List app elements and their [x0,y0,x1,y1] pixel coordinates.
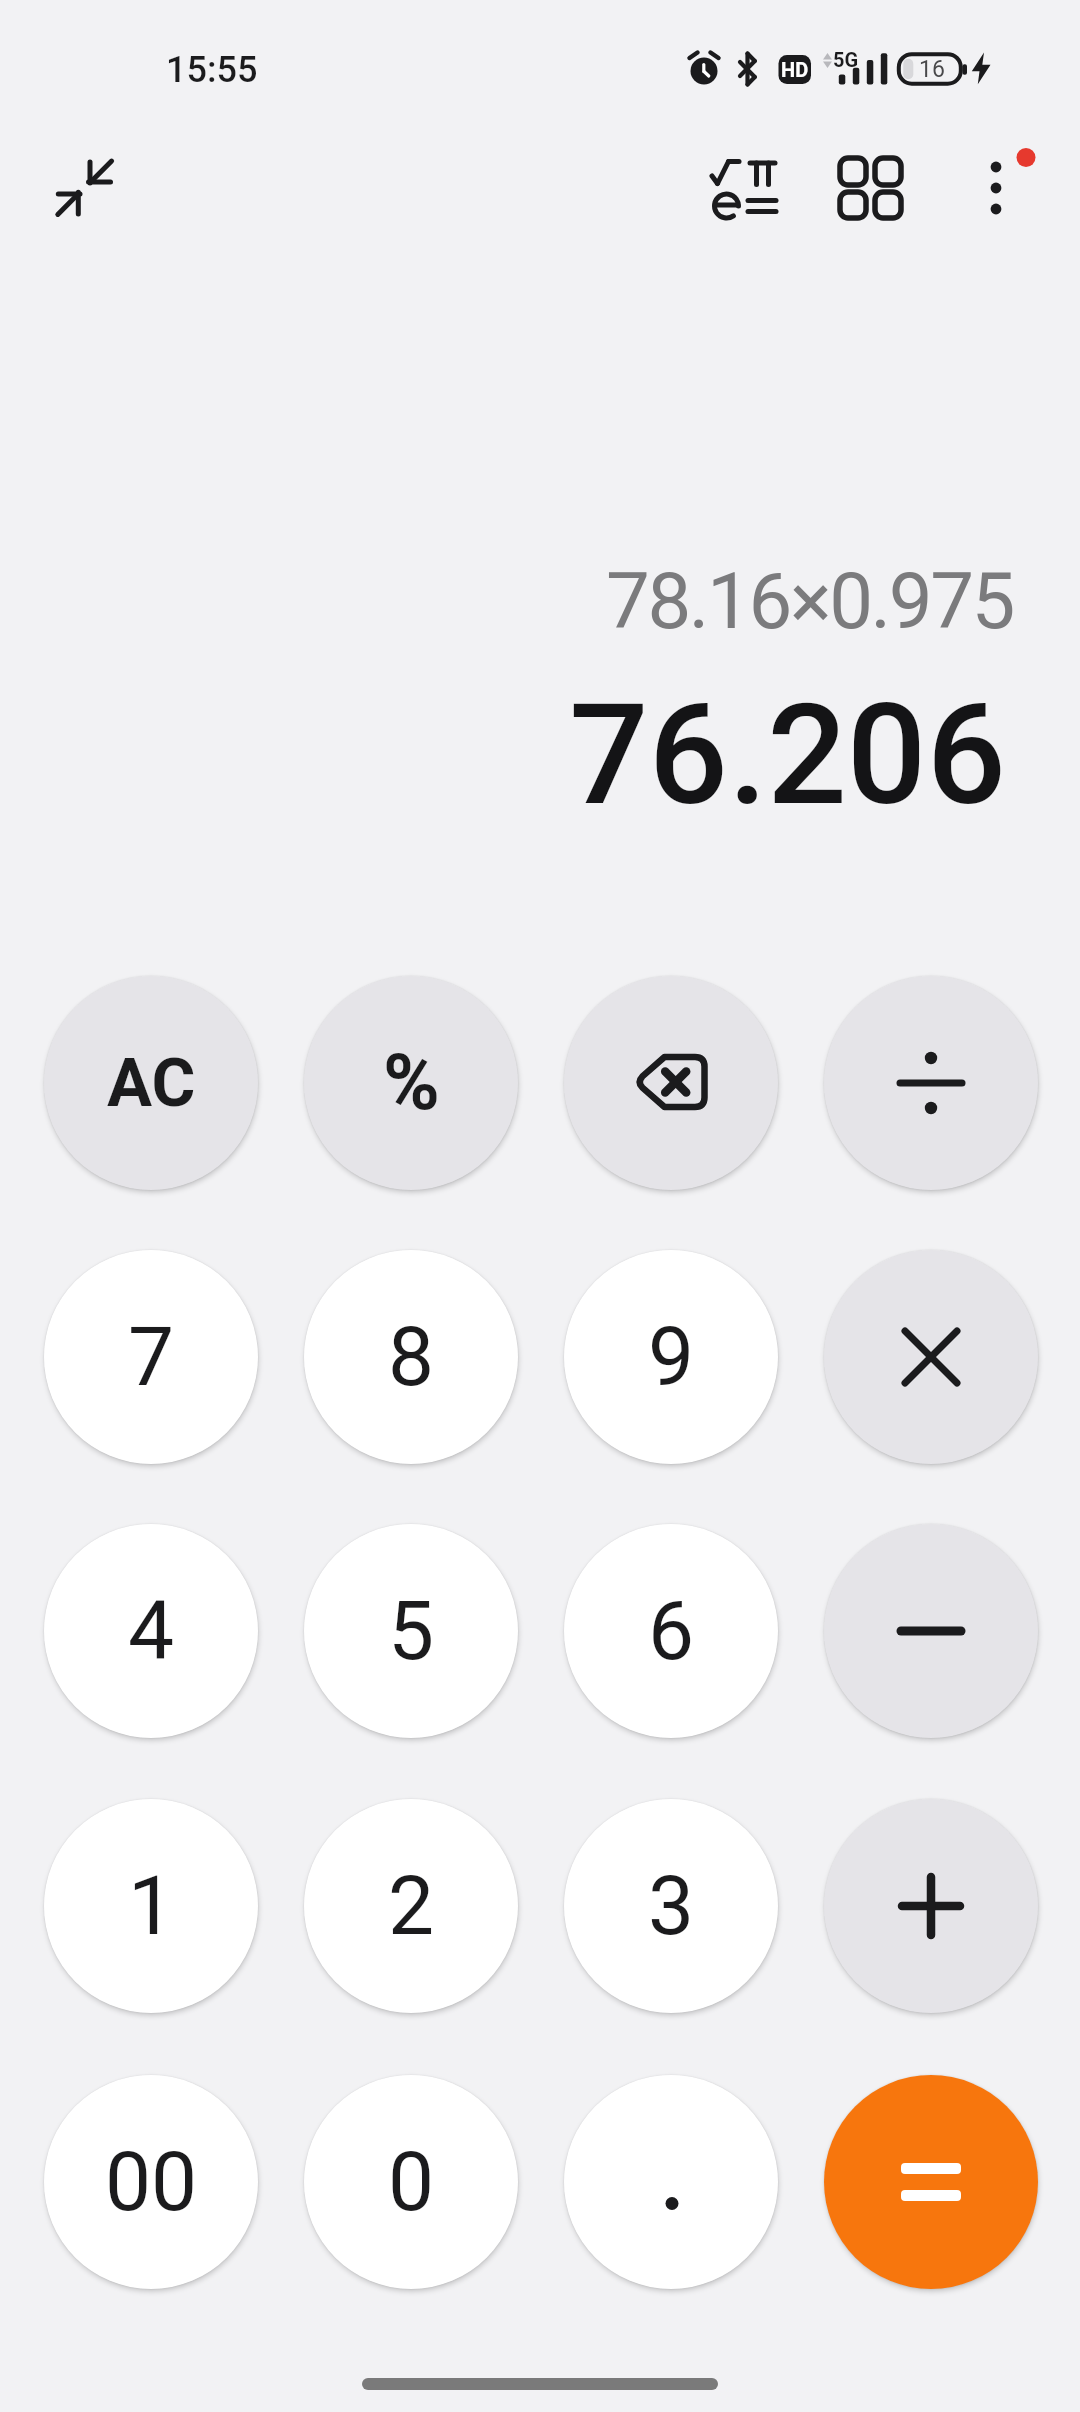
button[interactable] [824,1799,1038,2013]
staticText: 6 [648,1583,695,1679]
button[interactable]: 1 [44,1799,258,2013]
button[interactable] [704,152,784,228]
button[interactable] [824,2075,1038,2289]
button[interactable]: 4 [44,1524,258,1738]
staticText: 7 [128,1309,175,1405]
button[interactable]: 7 [44,1250,258,1464]
staticText: 2 [388,1858,435,1954]
staticText: 4 [128,1583,175,1679]
button[interactable] [824,976,1038,1190]
button[interactable]: % [304,976,518,1190]
button[interactable]: 8 [304,1250,518,1464]
staticText: 9 [648,1309,695,1405]
button[interactable] [824,1250,1038,1464]
button[interactable] [564,976,778,1190]
staticText: 3 [648,1858,695,1954]
staticText: 78.16×0.975 [606,556,1014,644]
staticText: AC [107,1044,196,1123]
staticText: 1 [128,1858,175,1954]
button[interactable]: 9 [564,1250,778,1464]
button[interactable]: 0 [304,2075,518,2289]
staticText: 8 [388,1309,435,1405]
staticText: 76.206 [569,673,1006,837]
button[interactable] [978,140,1040,220]
button[interactable] [824,1524,1038,1738]
staticText: 16 [919,56,945,83]
button[interactable] [50,152,120,222]
staticText: 15:55 [166,49,258,91]
staticText: % [383,1038,440,1128]
staticText: 5G [833,48,859,71]
staticText: 00 [105,2134,198,2230]
staticText: 0 [388,2134,435,2230]
staticText: HD [781,58,809,81]
button[interactable]: 2 [304,1799,518,2013]
button[interactable] [832,150,910,226]
button[interactable]: 00 [44,2075,258,2289]
button[interactable]: 5 [304,1524,518,1738]
staticText: 5 [388,1583,435,1679]
button[interactable] [564,2075,778,2289]
button[interactable]: AC [44,976,258,1190]
button[interactable]: 3 [564,1799,778,2013]
button[interactable]: 6 [564,1524,778,1738]
